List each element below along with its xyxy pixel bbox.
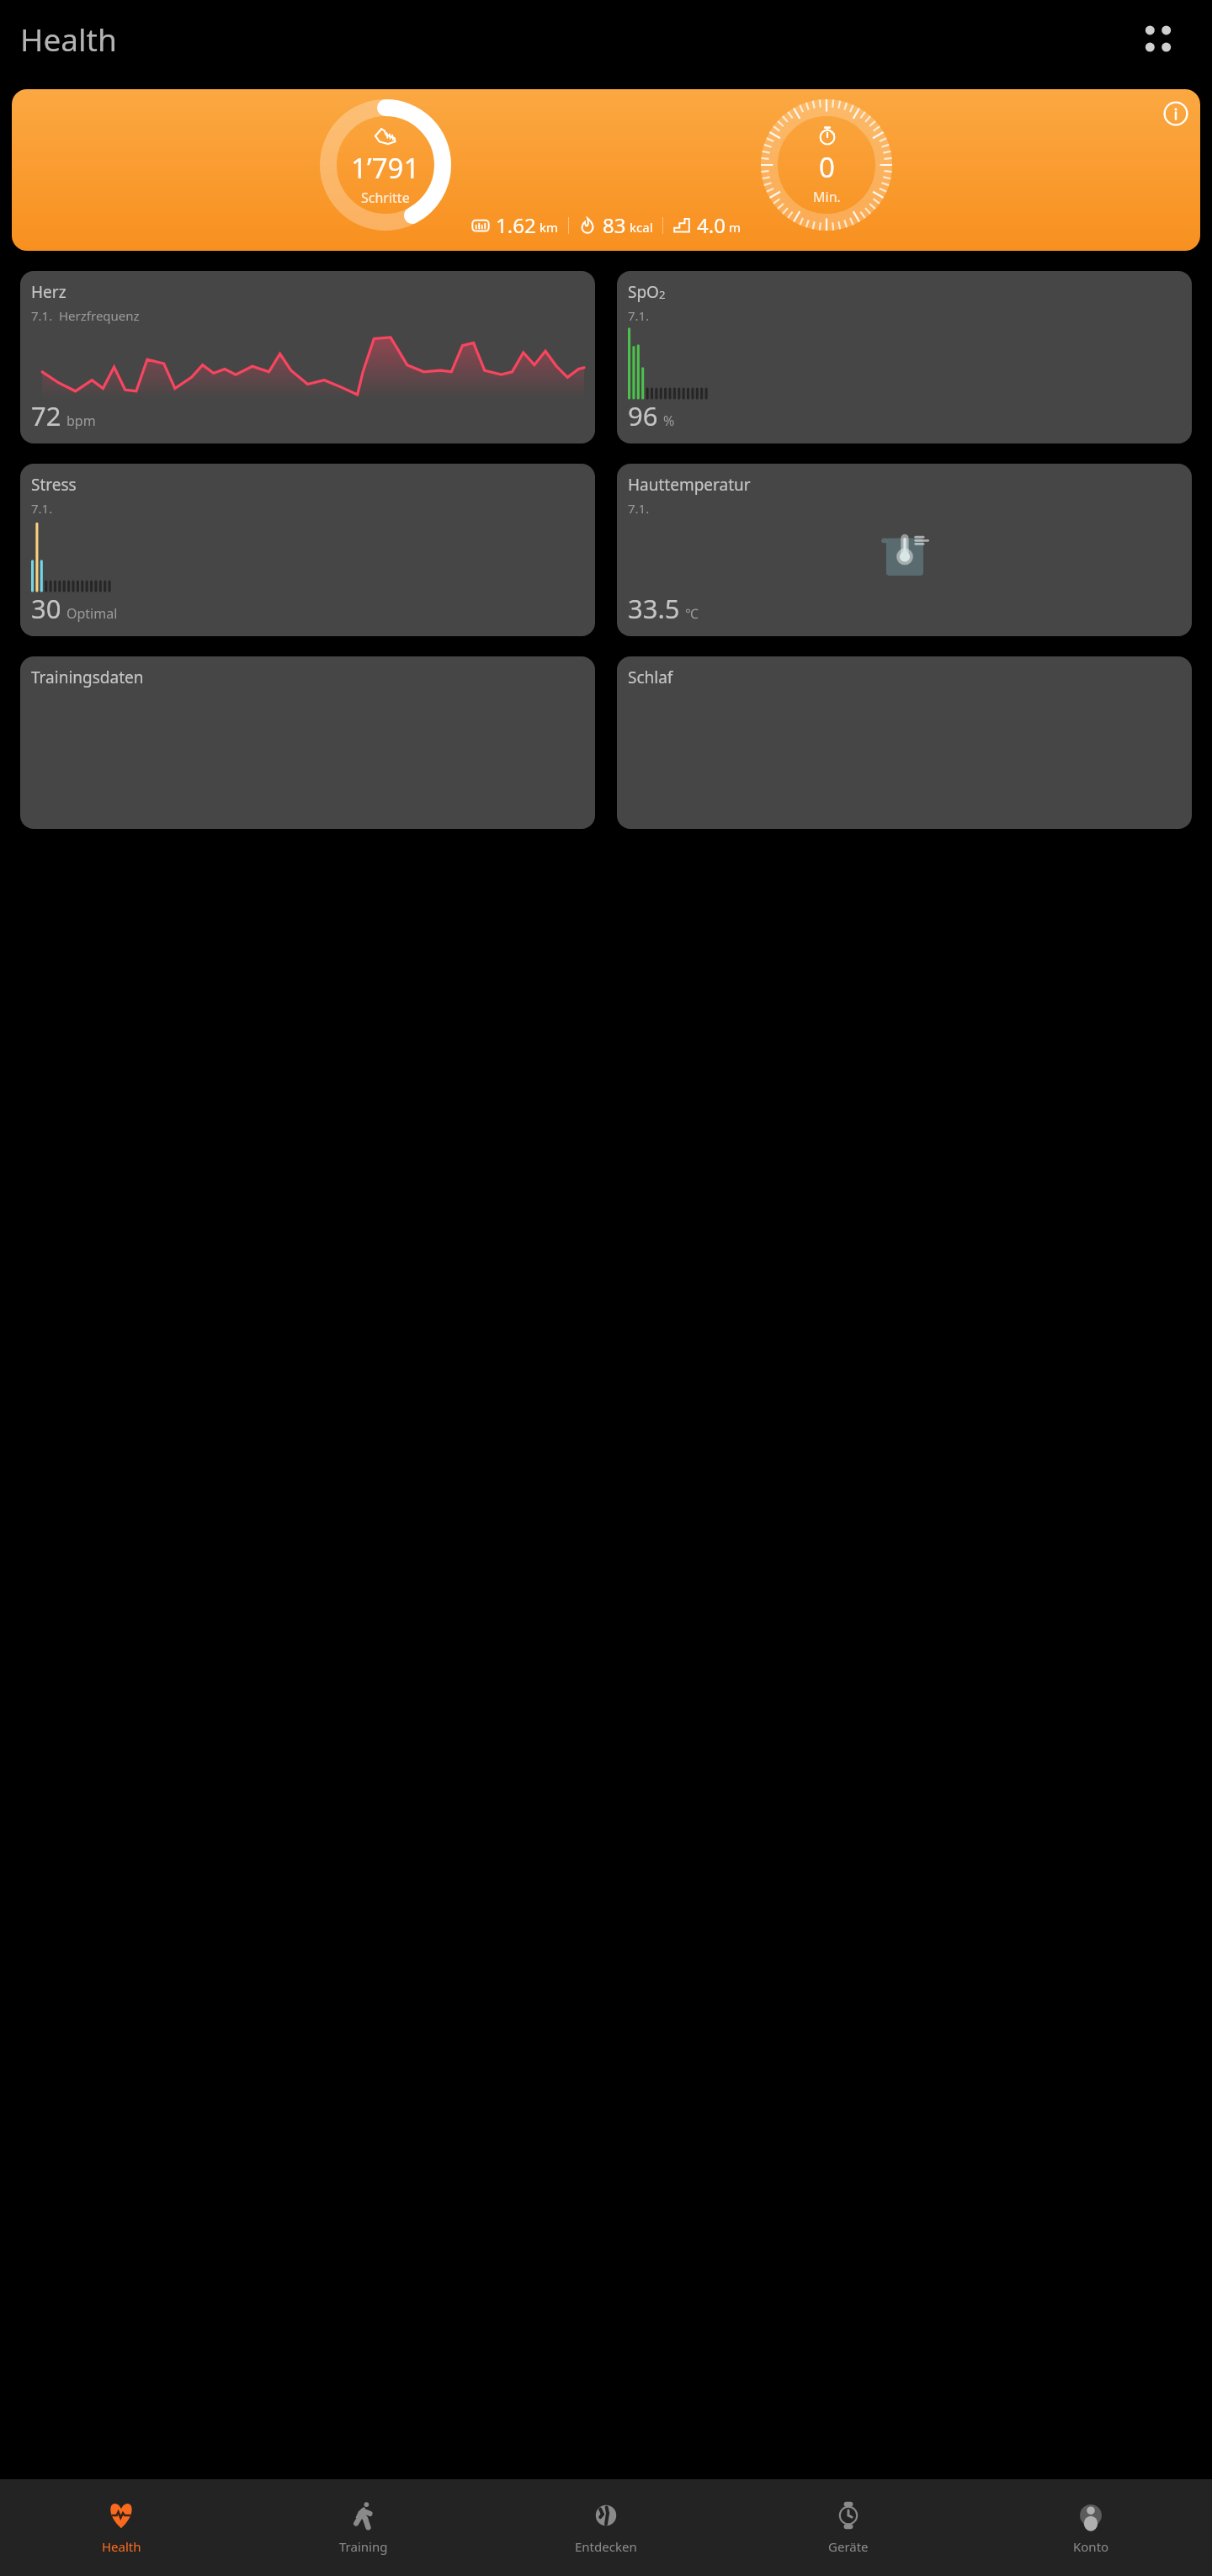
other: Info xyxy=(1163,101,1188,126)
staticText: Hauttemperatur xyxy=(628,474,751,496)
staticText: 7.1. xyxy=(628,307,650,324)
staticText: kcal xyxy=(630,219,653,236)
staticText: Optimal xyxy=(66,604,118,623)
staticText: % xyxy=(663,412,675,430)
staticText: Konto xyxy=(1073,2538,1109,2555)
staticText: 96 xyxy=(628,398,658,433)
button[interactable]: Schlaf xyxy=(617,656,1192,829)
staticText: SpO xyxy=(628,281,659,303)
staticText: 30 xyxy=(31,591,61,626)
button[interactable]: Health xyxy=(0,2479,242,2576)
staticText: Min. xyxy=(813,188,841,206)
staticText: bpm xyxy=(66,412,96,430)
staticText: Schritte xyxy=(361,189,410,207)
staticText: 0 xyxy=(819,148,835,186)
staticText: Health xyxy=(102,2538,141,2555)
staticText: 2 xyxy=(659,287,666,302)
button[interactable]: Trainingsdaten xyxy=(20,656,595,829)
staticText: 72 xyxy=(31,398,61,433)
staticText: 33.5 xyxy=(628,591,680,626)
button[interactable]: Stress xyxy=(20,464,595,636)
button[interactable]: Hauttemperatur xyxy=(617,464,1192,636)
staticText: Training xyxy=(339,2538,388,2555)
staticText: 4.0 xyxy=(697,211,726,239)
staticText: km xyxy=(540,219,559,236)
button[interactable]: Herz xyxy=(20,271,595,443)
staticText: ℃ xyxy=(685,604,699,623)
staticText: Stress xyxy=(31,474,77,496)
staticText: 7.1. xyxy=(628,500,650,517)
button[interactable]: SpO xyxy=(617,271,1192,443)
staticText: m xyxy=(729,219,742,236)
staticText: 7.1. xyxy=(31,500,53,517)
button[interactable]: Geräte xyxy=(727,2479,970,2576)
staticText: Geräte xyxy=(828,2538,869,2555)
staticText: Schlaf xyxy=(628,667,673,688)
staticText: 1’791 xyxy=(351,149,420,187)
staticText: Herz xyxy=(31,281,66,303)
staticText: 7.1. Herzfrequenz xyxy=(31,307,140,324)
button[interactable]: Entdecken xyxy=(485,2479,727,2576)
button[interactable]: Training xyxy=(242,2479,485,2576)
button[interactable]: More options xyxy=(1140,20,1177,57)
button[interactable]: Konto xyxy=(970,2479,1212,2576)
staticText: 83 xyxy=(603,211,626,239)
staticText: 1.62 xyxy=(496,211,536,239)
staticText: Trainingsdaten xyxy=(31,667,144,688)
staticText: Entdecken xyxy=(575,2538,637,2555)
staticText: Health xyxy=(20,18,117,60)
button[interactable]: Info xyxy=(12,89,1200,251)
